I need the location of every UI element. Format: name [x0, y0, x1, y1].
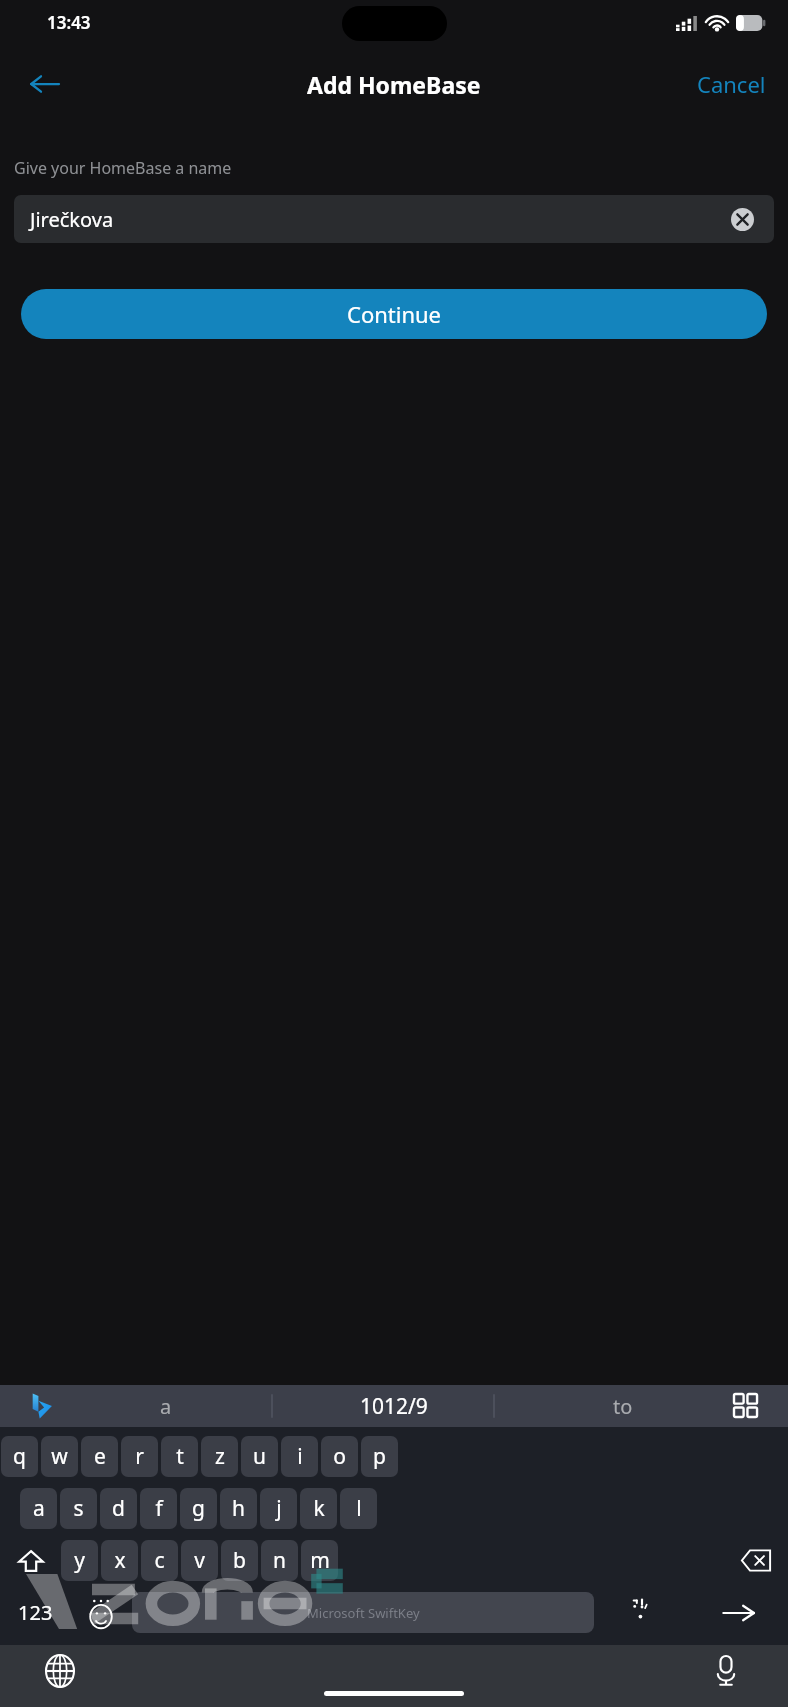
- button[interactable]: m: [301, 1540, 338, 1581]
- staticText: Microsoft SwiftKey: [307, 1604, 420, 1622]
- button[interactable]: h: [220, 1488, 257, 1529]
- button[interactable]: w: [41, 1436, 78, 1477]
- staticText: Add HomeBase: [307, 69, 481, 100]
- staticText: s: [73, 1494, 84, 1523]
- staticText: j: [276, 1494, 282, 1523]
- staticText: u: [253, 1442, 266, 1471]
- button[interactable]: 123: [0, 1592, 70, 1633]
- button[interactable]: d: [100, 1488, 137, 1529]
- staticText: r: [135, 1442, 144, 1471]
- button[interactable]: Enter: [690, 1592, 788, 1633]
- staticText: v: [194, 1546, 205, 1575]
- button[interactable]: Cancel: [675, 59, 788, 109]
- button[interactable]: p: [361, 1436, 398, 1477]
- button[interactable]: to: [613, 1393, 633, 1420]
- button[interactable]: e: [81, 1436, 118, 1477]
- button[interactable]: l: [340, 1488, 377, 1529]
- button[interactable]: g: [180, 1488, 217, 1529]
- button[interactable]: Continue: [21, 289, 767, 339]
- staticText: e: [94, 1442, 106, 1471]
- button[interactable]: Back: [14, 54, 74, 114]
- button[interactable]: f: [140, 1488, 177, 1529]
- staticText: a: [33, 1494, 45, 1523]
- button[interactable]: Voice input: [706, 1651, 746, 1691]
- button[interactable]: Change language: [40, 1651, 80, 1691]
- staticText: b: [233, 1546, 246, 1575]
- button[interactable]: j: [260, 1488, 297, 1529]
- button[interactable]: Jirečkova: [14, 195, 774, 243]
- staticText: w: [51, 1442, 68, 1471]
- button[interactable]: Bing: [24, 1389, 58, 1423]
- staticText: q: [13, 1442, 26, 1471]
- button[interactable]: y: [61, 1540, 98, 1581]
- button[interactable]: o: [321, 1436, 358, 1477]
- staticText: m: [310, 1546, 330, 1575]
- staticText: i: [297, 1442, 303, 1471]
- staticText: d: [112, 1494, 125, 1523]
- staticText: x: [114, 1546, 126, 1575]
- button[interactable]: Clear text: [726, 203, 758, 235]
- button[interactable]: k: [300, 1488, 337, 1529]
- button[interactable]: x: [101, 1540, 138, 1581]
- staticText: 123: [18, 1599, 53, 1626]
- button[interactable]: v: [181, 1540, 218, 1581]
- button[interactable]: More options: [729, 1389, 763, 1423]
- button[interactable]: z: [201, 1436, 238, 1477]
- button[interactable]: r: [121, 1436, 158, 1477]
- button[interactable]: q: [1, 1436, 38, 1477]
- button[interactable]: Emoji: [70, 1592, 132, 1633]
- staticText: h: [232, 1494, 245, 1523]
- staticText: p: [373, 1442, 386, 1471]
- staticText: g: [192, 1494, 205, 1523]
- button[interactable]: u: [241, 1436, 278, 1477]
- staticText: Give your HomeBase a name: [14, 157, 232, 179]
- staticText: t: [176, 1442, 184, 1471]
- staticText: Continue: [347, 299, 442, 329]
- staticText: Jirečkova: [30, 206, 114, 233]
- staticText: o: [333, 1442, 346, 1471]
- button[interactable]: Punctuation: [594, 1592, 690, 1633]
- staticText: l: [356, 1494, 362, 1523]
- staticText: k: [313, 1494, 325, 1523]
- button[interactable]: 1012/9: [360, 1392, 428, 1421]
- button[interactable]: Backspace: [724, 1540, 788, 1581]
- staticText: c: [154, 1546, 165, 1575]
- staticText: n: [273, 1546, 286, 1575]
- button[interactable]: c: [141, 1540, 178, 1581]
- staticText: Cancel: [697, 69, 766, 99]
- staticText: y: [74, 1546, 85, 1575]
- button[interactable]: a: [20, 1488, 57, 1529]
- button[interactable]: s: [60, 1488, 97, 1529]
- staticText: z: [215, 1442, 225, 1471]
- staticText: 13:43: [47, 11, 91, 34]
- button[interactable]: Shift: [0, 1540, 61, 1581]
- button[interactable]: a: [160, 1393, 172, 1420]
- button[interactable]: t: [161, 1436, 198, 1477]
- staticText: f: [155, 1494, 163, 1523]
- button[interactable]: n: [261, 1540, 298, 1581]
- button[interactable]: i: [281, 1436, 318, 1477]
- button[interactable]: Microsoft SwiftKey: [132, 1592, 594, 1633]
- button[interactable]: b: [221, 1540, 258, 1581]
